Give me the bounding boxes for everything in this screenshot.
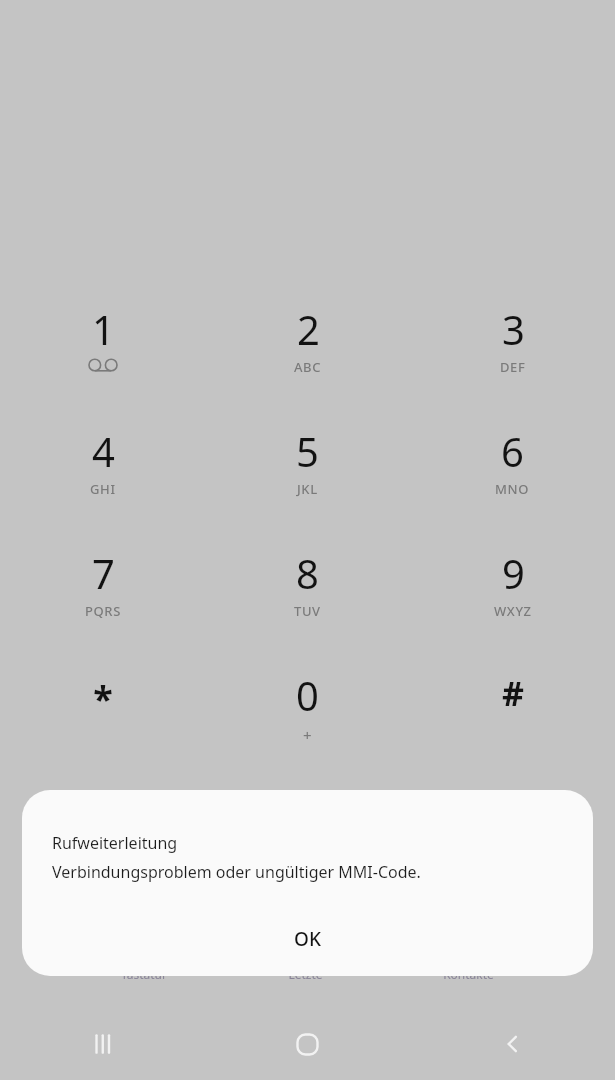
button[interactable]: 4 (0, 414, 205, 536)
button[interactable]: OK (22, 911, 593, 967)
staticText: 3 (502, 302, 525, 356)
staticText: ABC (294, 358, 322, 376)
button[interactable]: 1 (0, 292, 205, 414)
staticText: Kontakte (443, 966, 494, 982)
staticText: GHI (90, 480, 116, 498)
staticText: 6 (501, 424, 524, 478)
staticText: + (303, 725, 312, 745)
button[interactable]: # (410, 658, 615, 780)
staticText: OK (294, 926, 321, 952)
button[interactable]: 5 (205, 414, 410, 536)
staticText: WXYZ (494, 602, 532, 620)
staticText: TUV (294, 602, 321, 620)
staticText: 2 (297, 302, 320, 356)
staticText: DEF (500, 358, 526, 376)
staticText: Rufweiterleitung (52, 832, 178, 854)
button[interactable]: 7 (0, 536, 205, 658)
staticText: 8 (296, 546, 319, 600)
button[interactable]: Recent apps (0, 1008, 205, 1080)
button[interactable]: 3 (410, 292, 615, 414)
staticText: Verbindungsproblem oder ungültiger MMI-C… (52, 861, 421, 883)
staticText: 0 (296, 668, 319, 722)
staticText: 5 (296, 424, 319, 478)
button[interactable]: 6 (410, 414, 615, 536)
staticText: 1 (92, 302, 115, 356)
staticText: * (93, 674, 113, 723)
staticText: 7 (92, 546, 115, 600)
other: Voicemail (88, 358, 118, 372)
button[interactable]: 9 (410, 536, 615, 658)
staticText: JKL (297, 480, 318, 498)
staticText: MNO (495, 480, 530, 498)
staticText: 9 (502, 546, 525, 600)
staticText: 4 (92, 424, 115, 478)
staticText: Tastatur (121, 966, 167, 982)
staticText: # (502, 670, 524, 716)
button[interactable]: * (0, 658, 205, 780)
button[interactable]: 0 (205, 658, 410, 780)
staticText: Letzte (288, 966, 323, 982)
button[interactable]: Home (205, 1008, 410, 1080)
button[interactable]: 8 (205, 536, 410, 658)
staticText: PQRS (85, 602, 121, 620)
button[interactable]: 2 (205, 292, 410, 414)
